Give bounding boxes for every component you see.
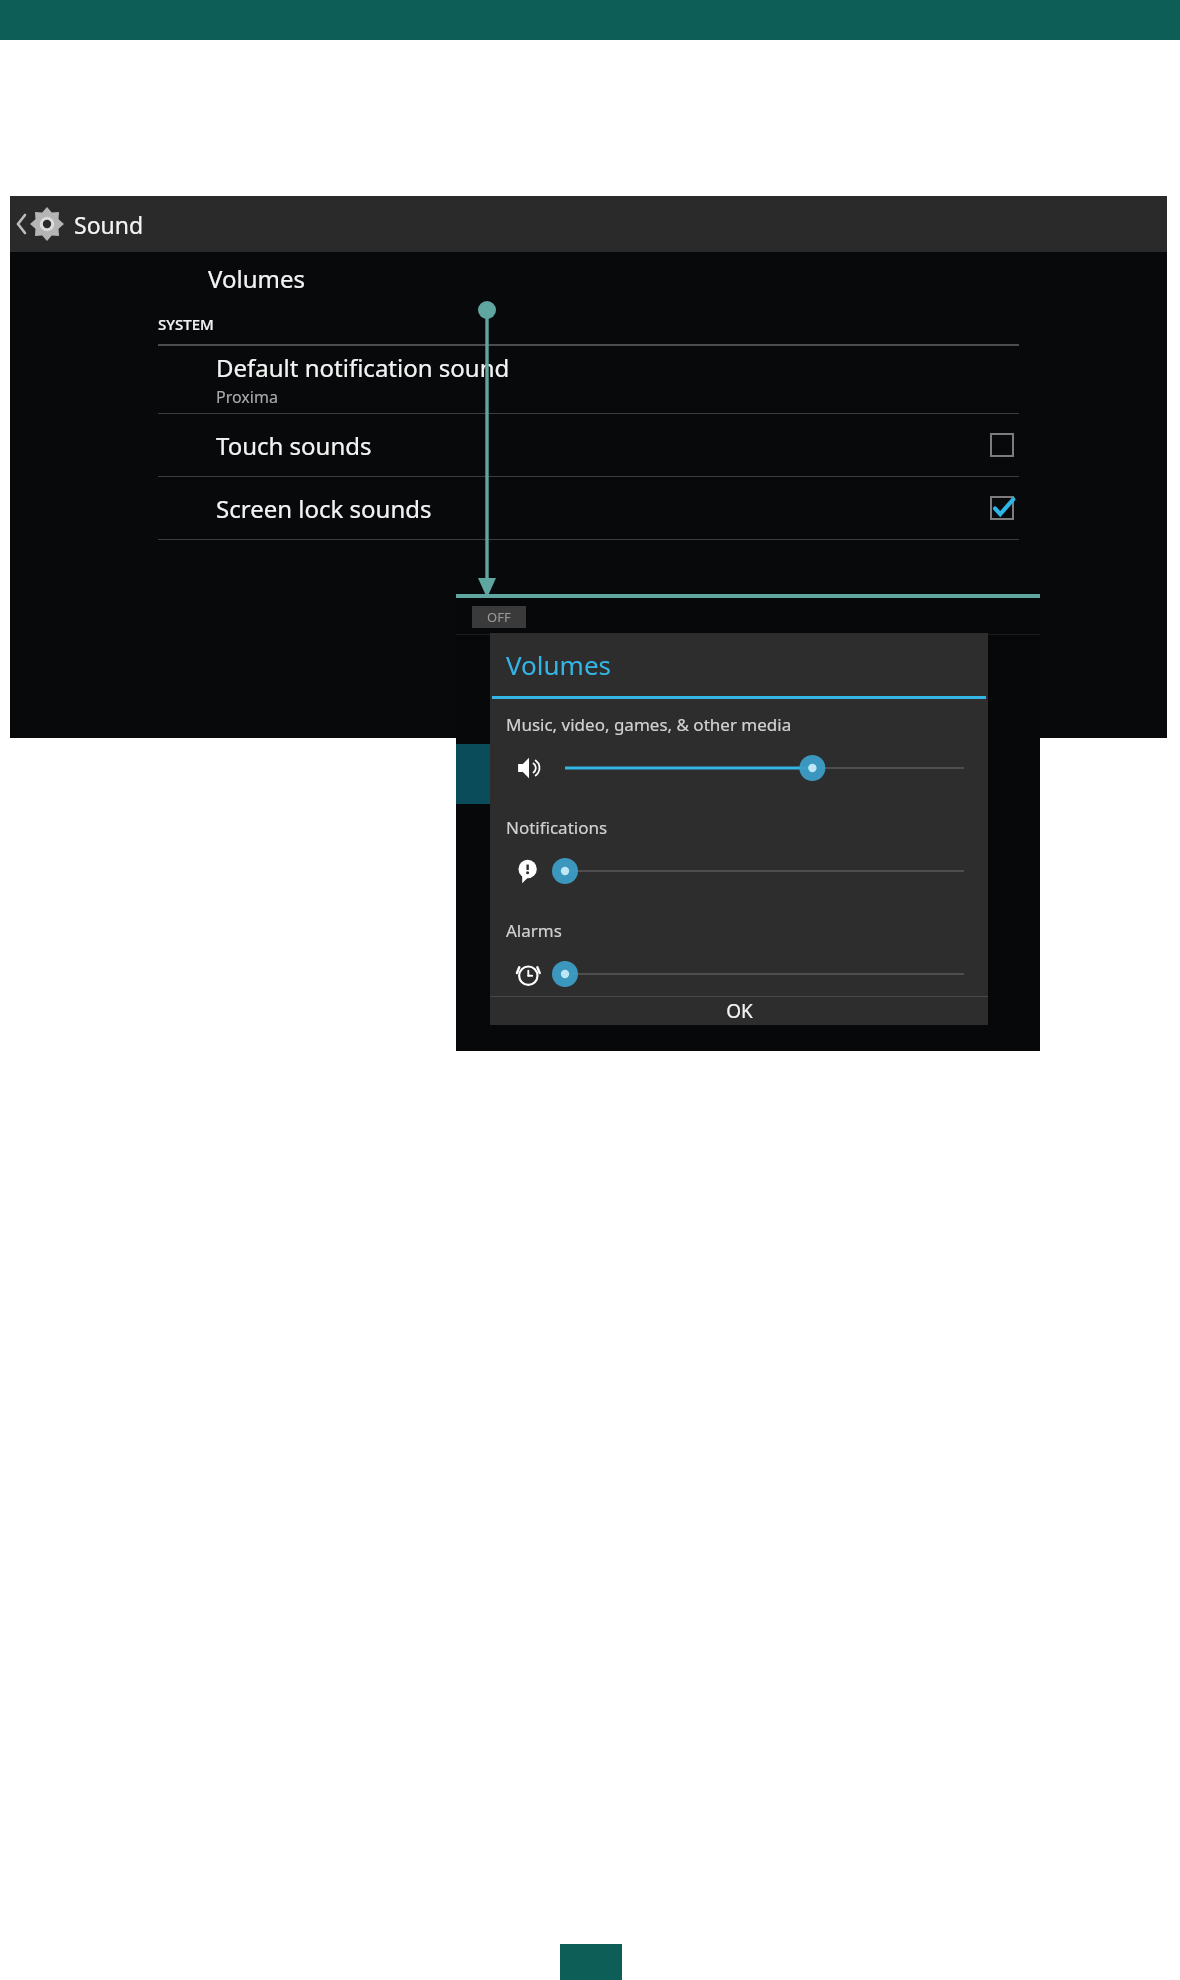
button[interactable] <box>490 952 988 996</box>
button[interactable] <box>490 746 988 790</box>
staticText: Notifications <box>506 816 608 839</box>
staticText: Screen lock sounds <box>216 492 432 525</box>
staticText: Alarms <box>506 919 562 942</box>
button[interactable]: Volumes <box>10 252 1167 304</box>
staticText: Music, video, games, & other media <box>506 713 792 736</box>
staticText: Default notification sound <box>216 351 510 384</box>
button[interactable]: Navigate up <box>16 196 74 252</box>
button[interactable]: Touch sounds <box>10 414 1167 476</box>
staticText: Volumes <box>208 262 305 295</box>
button[interactable]: OK <box>490 997 988 1025</box>
button[interactable]: Screen lock sounds <box>10 477 1167 539</box>
staticText: Proxima <box>216 386 278 408</box>
button[interactable] <box>490 849 988 893</box>
button[interactable]: Default notification sound <box>10 346 1167 413</box>
staticText: Touch sounds <box>216 429 372 462</box>
staticText: Sound <box>74 209 144 240</box>
staticText: OFF <box>487 608 511 626</box>
staticText: OK <box>726 998 753 1024</box>
staticText: Volumes <box>506 647 612 682</box>
staticText: SYSTEM <box>158 314 214 334</box>
